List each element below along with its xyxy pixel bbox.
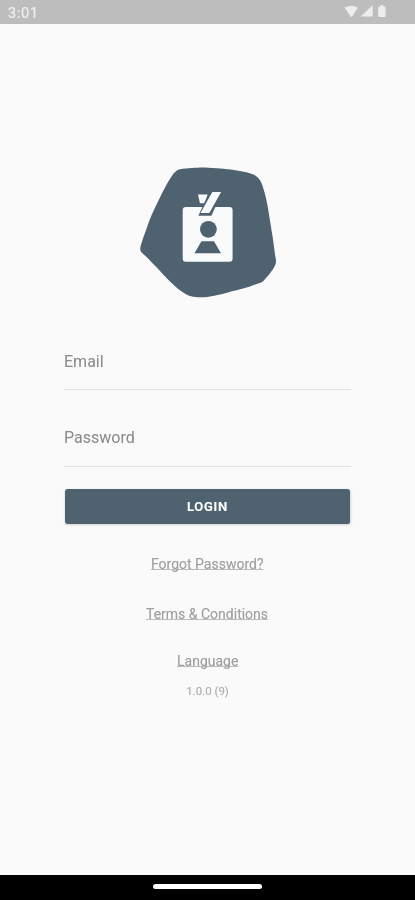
button[interactable]: Forgot Password? (145, 553, 270, 575)
staticText: Forgot Password? (151, 556, 264, 572)
staticText: Terms & Conditions (146, 606, 269, 622)
button[interactable]: Email (64, 352, 351, 390)
staticText: Email (64, 352, 104, 371)
staticText: 3:01 (8, 5, 39, 22)
staticText: LOGIN (187, 499, 228, 514)
staticText: 1.0.0 (9) (186, 684, 229, 697)
staticText: Password (64, 428, 135, 447)
button[interactable]: Language (171, 650, 245, 672)
button[interactable]: Password (64, 428, 351, 467)
other: Home (153, 884, 262, 889)
button[interactable]: Terms & Conditions (140, 603, 275, 625)
staticText: Language (177, 653, 239, 669)
button[interactable]: LOGIN (65, 489, 350, 524)
